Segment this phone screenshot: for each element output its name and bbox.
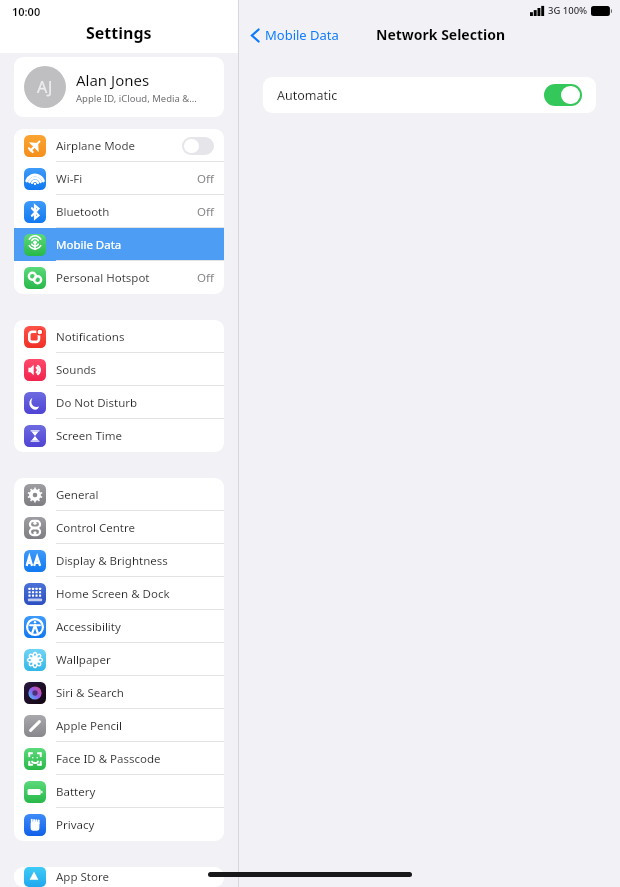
staticText: Do Not Disturb <box>56 395 214 411</box>
button[interactable]: Airplane Mode <box>14 129 224 162</box>
button[interactable]: Home Screen & Dock <box>14 577 224 610</box>
button[interactable]: Siri & Search <box>14 676 224 709</box>
staticText: Privacy <box>56 817 214 833</box>
button[interactable]: Apple Pencil <box>14 709 224 742</box>
staticText: Face ID & Passcode <box>56 751 214 767</box>
button[interactable]: Display & Brightness <box>14 544 224 577</box>
staticText: Apple Pencil <box>56 718 214 734</box>
staticText: Mobile Data <box>56 237 214 253</box>
button[interactable]: Control Centre <box>14 511 224 544</box>
staticText: App Store <box>56 869 214 885</box>
staticText: Display & Brightness <box>56 553 214 569</box>
button[interactable]: Wi-Fi <box>14 162 224 195</box>
staticText: Bluetooth <box>56 204 197 220</box>
staticText: 10:00 <box>12 4 41 19</box>
staticText: Personal Hotspot <box>56 270 197 286</box>
staticText: Off <box>197 171 214 187</box>
staticText: Airplane Mode <box>56 138 182 154</box>
button[interactable]: Mobile Data <box>249 24 341 46</box>
staticText: Off <box>197 270 214 286</box>
staticText: Settings <box>86 22 152 44</box>
button[interactable]: Toggle <box>182 137 214 155</box>
staticText: Battery <box>56 784 214 800</box>
button[interactable]: General <box>14 478 224 511</box>
button[interactable]: Automatic <box>263 77 596 113</box>
button[interactable]: Screen Time <box>14 419 224 452</box>
staticText: Accessibility <box>56 619 214 635</box>
staticText: Home Screen & Dock <box>56 586 214 602</box>
staticText: Alan Jones <box>76 70 150 90</box>
staticText: Screen Time <box>56 428 214 444</box>
button[interactable]: Battery <box>14 775 224 808</box>
staticText: Siri & Search <box>56 685 214 701</box>
staticText: Apple ID, iCloud, Media &… <box>76 92 197 105</box>
staticText: Automatic <box>277 87 544 104</box>
button[interactable]: Wallpaper <box>14 643 224 676</box>
staticText: Notifications <box>56 329 214 345</box>
button[interactable]: Personal Hotspot <box>14 261 224 294</box>
staticText: Sounds <box>56 362 214 378</box>
button[interactable]: Sounds <box>14 353 224 386</box>
staticText: AJ <box>37 76 53 98</box>
button[interactable]: Privacy <box>14 808 224 841</box>
staticText: Control Centre <box>56 520 214 536</box>
staticText: Off <box>197 204 214 220</box>
staticText: 3G 100% <box>548 4 588 17</box>
button[interactable]: Bluetooth <box>14 195 224 228</box>
button[interactable]: Face ID & Passcode <box>14 742 224 775</box>
staticText: Mobile Data <box>265 26 339 44</box>
button[interactable]: Accessibility <box>14 610 224 643</box>
staticText: Wi-Fi <box>56 171 197 187</box>
staticText: Network Selection <box>376 25 506 44</box>
button[interactable]: Toggle <box>544 84 582 106</box>
button[interactable]: Notifications <box>14 320 224 353</box>
staticText: Wallpaper <box>56 652 214 668</box>
button[interactable]: Mobile Data <box>14 228 224 261</box>
staticText: General <box>56 487 214 503</box>
button[interactable]: Do Not Disturb <box>14 386 224 419</box>
button[interactable]: AJ <box>14 57 224 117</box>
button[interactable]: App Store <box>14 867 224 887</box>
